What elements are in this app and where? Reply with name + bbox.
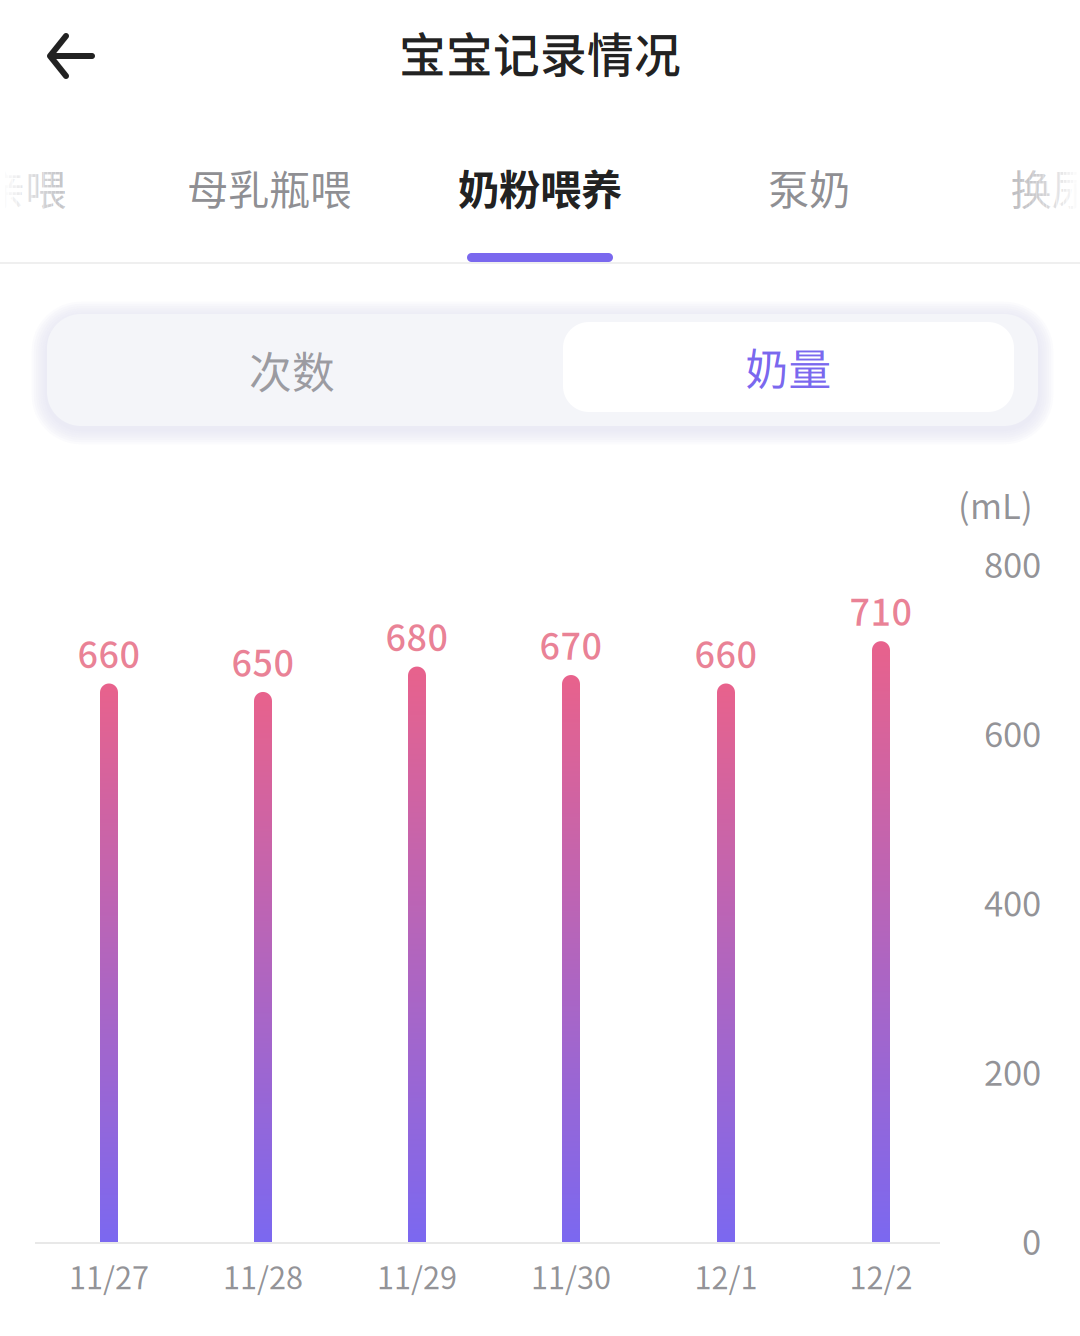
staticText: 650 (231, 635, 294, 687)
staticText: 600 (984, 707, 1041, 757)
staticText: 亲喂 (0, 157, 66, 217)
staticText: 800 (984, 538, 1041, 588)
staticText: 换尿布 (1010, 157, 1080, 217)
staticText: 宝宝记录情况 (399, 18, 681, 86)
staticText: 11/28 (223, 1254, 303, 1298)
staticText: 670 (539, 618, 602, 670)
staticText: 奶粉喂养 (458, 157, 622, 217)
staticText: 12/2 (849, 1254, 912, 1298)
staticText: 0 (1022, 1215, 1041, 1265)
button[interactable]: 泵奶 (694, 126, 924, 248)
button[interactable]: 换尿布 (957, 126, 1080, 248)
staticText: 母乳瓶喂 (187, 157, 351, 217)
staticText: 奶量 (745, 336, 831, 398)
staticText: 200 (984, 1046, 1041, 1096)
staticText: 680 (385, 609, 448, 662)
button[interactable]: Back (0, 0, 142, 112)
staticText: 11/29 (377, 1254, 457, 1298)
staticText: (mL) (958, 479, 1033, 529)
button[interactable]: 奶粉喂养 (425, 126, 655, 248)
button[interactable]: 奶量 (563, 322, 1014, 412)
staticText: 次数 (249, 339, 335, 401)
staticText: 11/30 (531, 1254, 611, 1298)
staticText: 12/1 (694, 1254, 757, 1298)
button[interactable]: 亲喂 (0, 126, 140, 248)
button[interactable]: 母乳瓶喂 (154, 126, 384, 248)
staticText: 660 (694, 626, 757, 678)
staticText: 710 (849, 584, 912, 636)
staticText: 660 (77, 626, 140, 678)
button[interactable]: 次数 (57, 314, 527, 426)
staticText: 11/27 (69, 1254, 149, 1298)
staticText: 400 (984, 876, 1041, 927)
staticText: 泵奶 (768, 157, 850, 217)
